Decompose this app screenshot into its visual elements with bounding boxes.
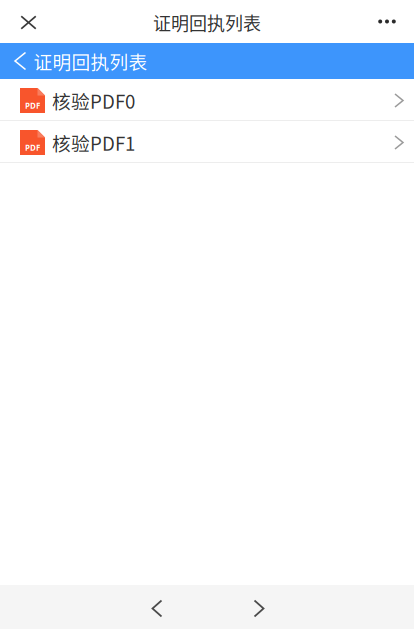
button[interactable]: Forward bbox=[228, 585, 288, 629]
button[interactable]: More options bbox=[360, 0, 414, 43]
button[interactable]: PDF bbox=[0, 121, 414, 163]
staticText: 核验PDF1 bbox=[52, 129, 135, 156]
button[interactable]: Back bbox=[126, 585, 186, 629]
staticText: PDF bbox=[25, 142, 40, 153]
staticText: PDF bbox=[25, 100, 40, 111]
staticText: 核验PDF0 bbox=[52, 87, 135, 114]
staticText: 证明回执列表 bbox=[153, 9, 261, 36]
button[interactable]: 证明回执列表 bbox=[0, 43, 161, 79]
button[interactable]: PDF bbox=[0, 79, 414, 121]
button[interactable]: Close bbox=[0, 0, 57, 43]
staticText: 证明回执列表 bbox=[33, 47, 147, 74]
